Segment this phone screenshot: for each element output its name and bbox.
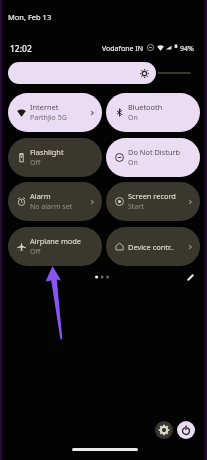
staticText: Vodafone IN <box>102 44 143 54</box>
button[interactable]: Screen record <box>106 182 200 221</box>
staticText: No alarm set <box>30 202 92 212</box>
staticText: Screen record <box>128 191 190 201</box>
button[interactable]: Device contr.. <box>106 227 200 266</box>
button[interactable]: Settings <box>155 421 173 439</box>
staticText: Device contr.. <box>128 242 190 252</box>
staticText: Start <box>128 202 190 212</box>
button[interactable]: Alarm <box>8 182 102 221</box>
staticText: Airplane mode <box>30 236 92 246</box>
staticText: Off <box>30 247 92 257</box>
staticText: 12:02 <box>10 43 32 55</box>
staticText: Do Not Disturb <box>128 147 190 157</box>
staticText: ParthJio 5G <box>30 113 92 123</box>
staticText: Bluetooth <box>128 102 190 112</box>
staticText: 94% <box>180 44 194 54</box>
staticText: Internet <box>30 102 92 112</box>
button[interactable]: Bluetooth <box>106 93 200 132</box>
button[interactable]: Airplane mode <box>8 227 102 266</box>
button[interactable]: Do Not Disturb <box>106 138 200 177</box>
button[interactable]: Flashlight <box>8 138 102 177</box>
staticText: On <box>128 158 190 168</box>
button[interactable]: Internet <box>8 93 102 132</box>
button[interactable]: Brightness <box>8 62 199 84</box>
staticText: Off <box>30 158 92 168</box>
staticText: Alarm <box>30 191 92 201</box>
button[interactable]: Power <box>177 421 195 439</box>
staticText: On <box>128 113 190 123</box>
staticText: Flashlight <box>30 147 92 157</box>
staticText: Mon, Feb 13 <box>8 12 52 22</box>
button[interactable]: Edit tiles <box>183 270 198 285</box>
